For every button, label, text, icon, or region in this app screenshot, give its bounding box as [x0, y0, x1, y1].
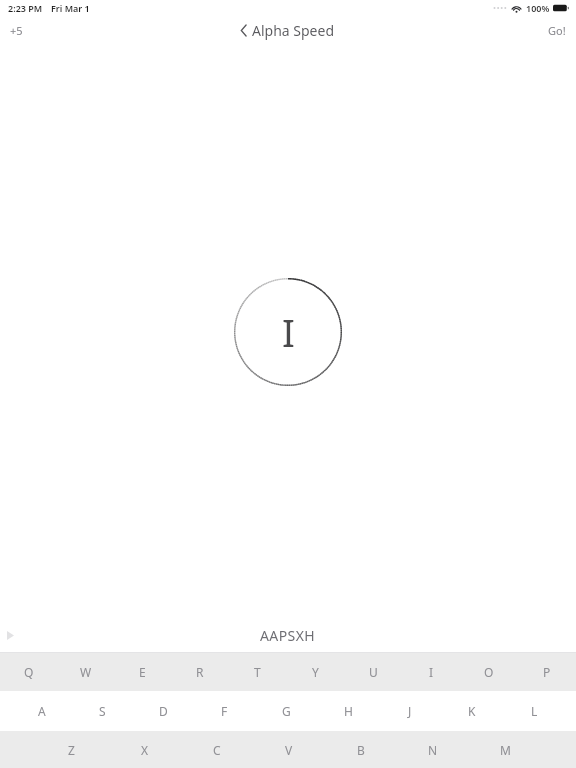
button[interactable]: M — [469, 731, 541, 768]
staticText: X — [141, 742, 149, 758]
button[interactable]: Alpha Speed — [235, 18, 341, 43]
button[interactable]: P — [518, 653, 576, 691]
staticText: Alpha Speed — [252, 21, 335, 40]
staticText: +5 — [10, 23, 23, 38]
button[interactable]: +5 — [0, 17, 33, 44]
staticText: R — [196, 664, 204, 680]
staticText: T — [254, 664, 261, 680]
button[interactable]: N — [397, 731, 469, 768]
button[interactable]: R — [171, 653, 228, 691]
staticText: O — [484, 664, 494, 680]
staticText: K — [468, 703, 476, 719]
staticText: 2:23 PM — [8, 2, 43, 14]
staticText: I — [282, 306, 295, 358]
button[interactable]: U — [344, 653, 402, 691]
button[interactable]: S — [72, 691, 133, 731]
staticText: 100% — [526, 2, 550, 14]
button[interactable]: B — [325, 731, 397, 768]
staticText: V — [285, 742, 293, 758]
staticText: F — [221, 703, 228, 719]
button[interactable]: V — [253, 731, 325, 768]
staticText: P — [543, 664, 551, 680]
button[interactable]: K — [441, 691, 503, 731]
staticText: Z — [68, 742, 75, 758]
button[interactable]: I — [402, 653, 460, 691]
staticText: A — [38, 703, 46, 719]
button[interactable]: L — [503, 691, 565, 731]
button[interactable]: E — [114, 653, 171, 691]
staticText: L — [531, 703, 538, 719]
button[interactable]: X — [108, 731, 181, 768]
button[interactable]: G — [255, 691, 317, 731]
staticText: N — [428, 742, 438, 758]
button[interactable]: T — [228, 653, 286, 691]
staticText: Y — [312, 664, 319, 680]
button[interactable]: H — [317, 691, 379, 731]
staticText: Go! — [548, 23, 566, 38]
button[interactable]: F — [194, 691, 255, 731]
staticText: Q — [24, 664, 34, 680]
button[interactable]: Go! — [538, 17, 576, 44]
staticText: AAPSXH — [260, 626, 316, 645]
button[interactable]: D — [133, 691, 194, 731]
staticText: C — [213, 742, 221, 758]
button[interactable]: W — [57, 653, 114, 691]
button[interactable]: J — [379, 691, 441, 731]
staticText: J — [408, 703, 412, 719]
staticText: G — [282, 703, 291, 719]
staticText: B — [357, 742, 365, 758]
button[interactable]: A — [11, 691, 72, 731]
staticText: D — [159, 703, 168, 719]
staticText: I — [429, 664, 434, 680]
staticText: Fri Mar 1 — [51, 2, 90, 14]
button[interactable]: O — [460, 653, 518, 691]
staticText: S — [99, 703, 106, 719]
staticText: U — [369, 664, 378, 680]
button[interactable]: Y — [286, 653, 344, 691]
staticText: W — [80, 664, 92, 680]
staticText: M — [500, 742, 511, 758]
button[interactable]: Timer — [233, 277, 343, 387]
button[interactable]: Q — [0, 653, 57, 691]
button[interactable]: C — [181, 731, 253, 768]
button[interactable]: Play — [0, 623, 24, 648]
staticText: H — [344, 703, 353, 719]
button[interactable]: Z — [35, 731, 108, 768]
staticText: E — [139, 664, 146, 680]
